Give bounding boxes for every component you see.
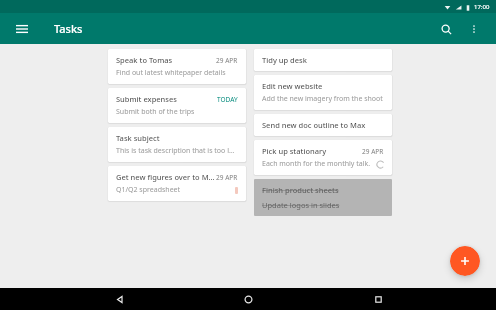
staticText: This is task description that is too lon… [116, 146, 238, 156]
button[interactable]: Open navigation menu [10, 17, 34, 41]
staticText: Edit new website [262, 81, 323, 91]
button[interactable]: Tidy up desk [254, 49, 392, 71]
staticText: 17:00 [474, 3, 490, 11]
staticText: Q1/Q2 spreadsheet [116, 185, 181, 195]
staticText: Get new figures over to Mike [116, 172, 216, 182]
button[interactable]: Speak to Tomas [108, 49, 246, 84]
staticText: Finish product sheets [262, 185, 339, 195]
staticText: 29 APR [216, 173, 238, 182]
staticText: Find out latest whitepaper details [116, 68, 226, 78]
staticText: Task subject [116, 133, 160, 143]
button[interactable]: Home [237, 288, 259, 310]
staticText: TODAY [217, 95, 238, 104]
staticText: 29 APR [216, 56, 238, 65]
button[interactable]: Task subject [108, 127, 246, 162]
staticText: 29 APR [362, 147, 384, 156]
staticText: Tasks [54, 21, 83, 36]
staticText: Update logos in slides [262, 200, 340, 210]
staticText: Add the new imagery from the shoot [262, 94, 383, 104]
staticText: Pick up stationary [262, 146, 327, 156]
staticText: Each month for the monthly talk. [262, 159, 371, 169]
button[interactable]: Submit expenses [108, 88, 246, 123]
button[interactable]: Back [108, 288, 130, 310]
button[interactable]: Edit new website [254, 75, 392, 110]
staticText: Tidy up desk [262, 55, 307, 65]
button[interactable]: Send new doc outline to Max [254, 114, 392, 136]
button[interactable]: Finish product sheets [254, 179, 392, 216]
button[interactable]: Add task [450, 246, 480, 276]
staticText: Submit expenses [116, 94, 177, 104]
button[interactable]: Recent apps [367, 288, 389, 310]
button[interactable]: Get new figures over to Mike [108, 166, 246, 201]
staticText: Send new doc outline to Max [262, 120, 366, 130]
staticText: Submit both of the trips [116, 107, 195, 117]
button[interactable]: Pick up stationary [254, 140, 392, 175]
button[interactable]: More options [462, 17, 486, 41]
button[interactable]: Search [434, 17, 458, 41]
staticText: Speak to Tomas [116, 55, 173, 65]
